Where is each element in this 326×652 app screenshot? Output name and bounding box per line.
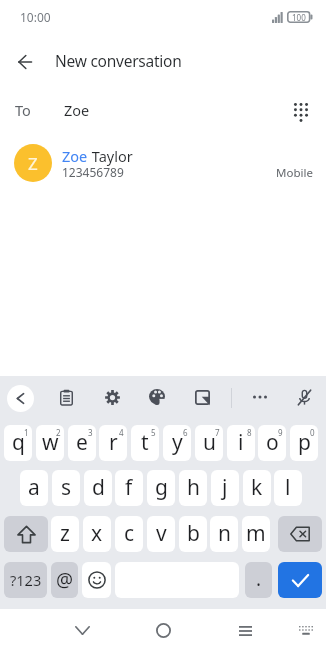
staticText: f — [125, 473, 133, 502]
staticText: Z — [28, 152, 38, 175]
button[interactable]: Switch keyboard — [286, 609, 326, 652]
staticText: 10:00 — [20, 9, 51, 25]
staticText: 5 — [151, 427, 156, 438]
staticText: w — [42, 428, 59, 457]
button[interactable]: Home — [141, 609, 185, 652]
staticText: 6 — [183, 427, 188, 438]
staticText: d — [92, 473, 105, 502]
button[interactable]: More options — [245, 382, 275, 412]
button[interactable]: i — [227, 425, 255, 461]
staticText: 100 — [292, 12, 306, 23]
button[interactable]: Dialpad — [285, 97, 316, 128]
button[interactable]: Done — [278, 562, 322, 598]
button[interactable]: d — [84, 470, 112, 506]
button[interactable]: s — [52, 470, 80, 506]
button[interactable]: b — [179, 516, 207, 552]
button[interactable]: z — [51, 516, 79, 552]
button[interactable]: m — [242, 516, 270, 552]
button[interactable]: Voice input off — [289, 382, 319, 412]
staticText: m — [246, 519, 266, 548]
button[interactable]: x — [83, 516, 111, 552]
button[interactable]: o — [258, 425, 286, 461]
staticText: p — [298, 428, 311, 457]
button[interactable]: Back — [60, 609, 104, 652]
button[interactable]: u — [195, 425, 223, 461]
staticText: 0 — [310, 427, 315, 438]
button[interactable]: f — [115, 470, 143, 506]
button[interactable]: q — [4, 425, 32, 461]
button[interactable]: Emoji — [82, 562, 111, 598]
staticText: 9 — [278, 427, 283, 438]
staticText: n — [218, 519, 231, 548]
staticText: Zoe — [62, 146, 88, 166]
button[interactable]: Collapse toolbar — [7, 385, 34, 412]
button[interactable]: y — [163, 425, 191, 461]
button[interactable]: Settings — [97, 382, 127, 412]
button[interactable]: Shift — [4, 516, 48, 552]
button[interactable]: . — [245, 562, 272, 598]
staticText: 3 — [88, 427, 93, 438]
staticText: v — [156, 519, 167, 548]
staticText: To — [15, 100, 31, 120]
button[interactable]: Clipboard — [51, 382, 81, 412]
staticText: b — [187, 519, 200, 548]
button[interactable]: n — [210, 516, 238, 552]
button[interactable]: Backspace — [278, 516, 322, 552]
staticText: e — [76, 428, 88, 457]
button[interactable]: t — [131, 425, 159, 461]
button[interactable]: r — [99, 425, 127, 461]
button[interactable]: c — [115, 516, 143, 552]
staticText: 7 — [215, 427, 220, 438]
staticText: j — [222, 473, 228, 502]
button[interactable]: Z — [0, 136, 326, 192]
button[interactable]: Themes — [142, 382, 172, 412]
staticText: o — [266, 428, 279, 457]
button[interactable]: h — [179, 470, 207, 506]
staticText: c — [124, 519, 135, 548]
staticText: h — [187, 473, 200, 502]
staticText: x — [91, 519, 103, 548]
button[interactable]: a — [20, 470, 48, 506]
staticText: q — [12, 428, 25, 457]
staticText: k — [251, 473, 263, 502]
staticText: l — [285, 473, 291, 502]
button[interactable]: Recent apps — [223, 609, 267, 652]
button[interactable]: k — [243, 470, 271, 506]
staticText: Taylor — [88, 146, 133, 166]
staticText: y — [172, 428, 183, 457]
button[interactable]: Stickers — [187, 382, 217, 412]
staticText: 4 — [119, 427, 124, 438]
button[interactable]: e — [68, 425, 96, 461]
staticText: 1 — [24, 427, 29, 438]
staticText: 2 — [56, 427, 61, 438]
staticText: a — [28, 473, 40, 502]
staticText: i — [238, 428, 244, 457]
staticText: @ — [56, 567, 74, 593]
button[interactable]: @ — [51, 562, 78, 598]
button[interactable]: j — [211, 470, 239, 506]
button[interactable]: ?123 — [4, 562, 47, 598]
staticText: t — [141, 428, 149, 457]
staticText: Mobile — [276, 165, 313, 181]
staticText: 123456789 — [62, 164, 124, 180]
staticText: New conversation — [55, 50, 182, 71]
staticText: r — [109, 428, 118, 457]
staticText: u — [203, 428, 216, 457]
staticText: z — [60, 519, 70, 548]
staticText: s — [61, 473, 72, 502]
button[interactable]: l — [274, 470, 302, 506]
button[interactable]: v — [147, 516, 175, 552]
staticText: ?123 — [10, 570, 42, 590]
button[interactable]: p — [290, 425, 318, 461]
staticText: Zoe — [64, 100, 90, 120]
button[interactable]: w — [36, 425, 64, 461]
staticText: g — [155, 473, 168, 502]
staticText: 8 — [247, 427, 252, 438]
button[interactable]: Back — [7, 44, 43, 80]
button[interactable]: g — [147, 470, 175, 506]
staticText: . — [256, 566, 262, 592]
